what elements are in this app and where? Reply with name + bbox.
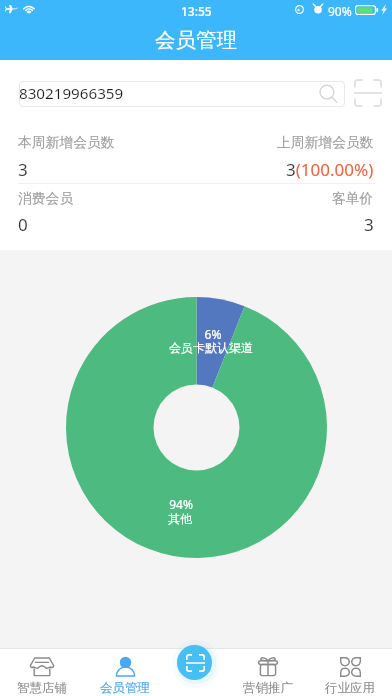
button[interactable]: 扫一扫: [177, 645, 212, 680]
staticText: 13:55: [181, 3, 212, 19]
staticText: 830219966359: [19, 83, 124, 104]
button[interactable]: 营销推广: [229, 648, 307, 696]
staticText: 0: [18, 213, 28, 236]
staticText: 3: [364, 213, 374, 236]
staticText: 3: [18, 158, 28, 181]
staticText: 消费会员: [18, 190, 74, 207]
staticText: 94%: [111, 496, 251, 512]
staticText: 6%: [143, 326, 283, 342]
staticText: 会员卡默认渠道: [141, 340, 281, 355]
staticText: 其他: [110, 511, 250, 526]
button[interactable]: 智慧店铺: [3, 648, 81, 696]
staticText: 行业应用: [325, 680, 375, 696]
button[interactable]: 会员管理: [86, 648, 164, 696]
staticText: 营销推广: [243, 680, 293, 696]
button[interactable]: 扫码: [354, 79, 382, 107]
button[interactable]: 行业应用: [311, 648, 389, 696]
staticText: 客单价: [332, 190, 374, 207]
staticText: 智慧店铺: [17, 680, 67, 696]
staticText: 会员管理: [100, 680, 150, 696]
staticText: 上周新增会员数: [277, 134, 374, 151]
staticText: 3(100.00%): [286, 158, 374, 181]
staticText: 本周新增会员数: [18, 134, 115, 151]
button[interactable]: 830219966359: [19, 81, 345, 107]
staticText: 会员管理: [0, 27, 392, 53]
staticText: 90%: [328, 3, 352, 19]
